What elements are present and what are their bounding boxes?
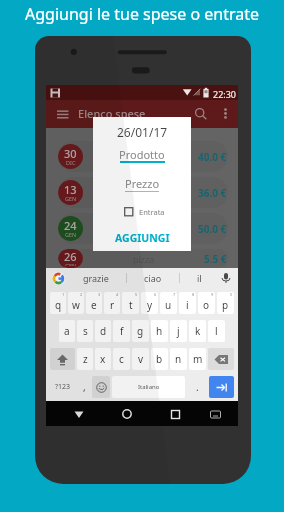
button[interactable]: Voice input <box>219 271 233 285</box>
button[interactable]: Hide keyboard <box>204 403 226 425</box>
button[interactable]: 9 <box>198 292 215 314</box>
staticText: il <box>197 272 202 284</box>
button[interactable]: Menu <box>53 106 72 125</box>
staticText: p <box>222 298 229 312</box>
button[interactable]: f <box>113 320 130 342</box>
button[interactable]: AGGIUNGI <box>111 229 174 247</box>
staticText: grazie <box>83 272 109 284</box>
button[interactable]: c <box>113 348 130 370</box>
staticText: ?123 <box>55 382 71 392</box>
button[interactable]: Google <box>51 271 65 285</box>
button[interactable]: b <box>151 348 168 370</box>
staticText: f <box>120 324 124 338</box>
button[interactable]: 1 <box>50 292 66 314</box>
staticText: 1 <box>62 292 65 297</box>
button[interactable]: 0 <box>217 292 234 314</box>
staticText: cena <box>134 151 155 163</box>
button[interactable]: Shift <box>50 348 75 370</box>
button[interactable]: 8 <box>179 292 196 314</box>
staticText: 36.0 € <box>198 186 227 200</box>
staticText: 0 <box>230 292 233 297</box>
button[interactable]: , <box>78 376 90 398</box>
button[interactable]: ?123 <box>50 376 76 398</box>
button[interactable]: il <box>195 270 204 286</box>
button[interactable]: Emoji <box>92 376 110 398</box>
staticText: t <box>129 298 133 312</box>
staticText: 4 <box>116 292 119 297</box>
staticText: 13 <box>64 182 77 197</box>
staticText: 26/01/17 <box>117 124 168 140</box>
staticText: m <box>193 352 203 366</box>
button[interactable]: 30 <box>58 141 228 172</box>
staticText: h <box>156 324 163 338</box>
button[interactable]: Back <box>68 403 90 425</box>
button[interactable]: . <box>187 376 207 398</box>
button[interactable]: 3 <box>86 292 102 314</box>
button[interactable]: n <box>170 348 187 370</box>
button[interactable]: Home <box>116 403 138 425</box>
staticText: GEN <box>65 231 77 238</box>
staticText: GEN <box>65 195 77 202</box>
button[interactable]: ciao <box>142 270 164 286</box>
button[interactable]: grazie <box>81 270 111 286</box>
button[interactable]: l <box>208 320 225 342</box>
button[interactable]: Backspace <box>208 348 234 370</box>
staticText: c <box>119 352 124 366</box>
staticText: 6 <box>154 292 157 297</box>
button[interactable]: 5 <box>122 292 139 314</box>
staticText: 24 <box>64 218 77 233</box>
button[interactable]: 7 <box>160 292 177 314</box>
staticText: Aggiungi le tue spese o entrate <box>25 3 260 25</box>
staticText: Prodotto <box>119 147 165 162</box>
staticText: k <box>195 324 201 338</box>
staticText: d <box>100 324 107 338</box>
staticText: 40.0 € <box>198 150 227 164</box>
staticText: x <box>100 352 106 366</box>
button[interactable]: s <box>77 320 93 342</box>
button[interactable]: x <box>95 348 111 370</box>
staticText: o <box>203 298 210 312</box>
staticText: 2 <box>80 292 83 297</box>
staticText: w <box>72 298 80 312</box>
staticText: Italiano <box>138 383 160 391</box>
button[interactable]: 13 <box>58 177 228 208</box>
staticText: q <box>55 298 62 312</box>
staticText: l <box>215 324 218 338</box>
button[interactable]: Search <box>192 105 210 123</box>
staticText: DIC <box>66 159 76 166</box>
button[interactable]: Italiano <box>112 376 185 398</box>
staticText: Prezzo <box>125 176 160 191</box>
staticText: pizza <box>133 253 155 265</box>
button[interactable]: Enter <box>209 376 234 398</box>
staticText: spesa <box>132 187 157 199</box>
staticText: Entrata <box>139 207 165 217</box>
button[interactable]: 26 <box>58 249 228 268</box>
button[interactable]: Entrata <box>124 207 165 217</box>
button[interactable]: g <box>132 320 149 342</box>
button[interactable]: h <box>151 320 168 342</box>
staticText: 5 <box>135 292 138 297</box>
staticText: GEN <box>65 262 77 266</box>
button[interactable]: Recents <box>164 403 186 425</box>
staticText: r <box>110 298 115 312</box>
button[interactable]: More options <box>217 105 233 121</box>
staticText: 26 <box>64 249 77 264</box>
button[interactable]: 24 <box>58 213 228 244</box>
staticText: 5.5 € <box>204 252 227 266</box>
button[interactable]: z <box>77 348 93 370</box>
staticText: 8 <box>192 292 195 297</box>
staticText: i <box>186 298 189 312</box>
button[interactable]: d <box>95 320 111 342</box>
staticText: 50.0 € <box>198 222 227 236</box>
staticText: stipendio <box>124 223 164 235</box>
button[interactable]: v <box>132 348 149 370</box>
staticText: u <box>165 298 172 312</box>
button[interactable]: 4 <box>104 292 120 314</box>
button[interactable]: m <box>189 348 206 370</box>
button[interactable]: a <box>59 320 75 342</box>
button[interactable]: j <box>170 320 187 342</box>
button[interactable]: 2 <box>68 292 84 314</box>
button[interactable]: 6 <box>141 292 158 314</box>
button[interactable]: k <box>189 320 206 342</box>
staticText: 9 <box>211 292 214 297</box>
